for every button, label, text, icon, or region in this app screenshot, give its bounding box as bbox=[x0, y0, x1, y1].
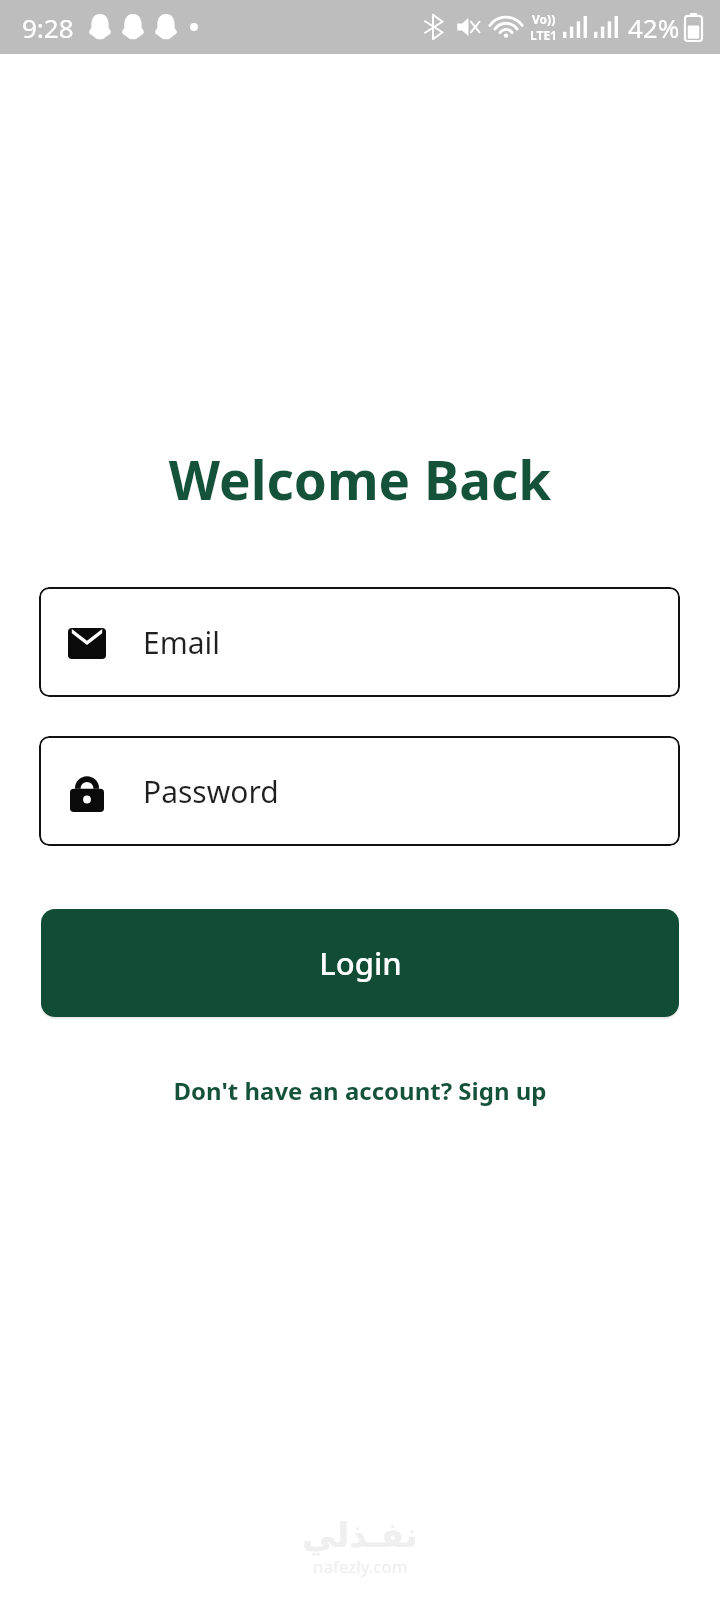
staticText: Login bbox=[319, 942, 402, 984]
staticText: LTE1 bbox=[530, 27, 557, 43]
button[interactable]: Email bbox=[39, 587, 680, 697]
staticText: nafezly.com bbox=[313, 1555, 408, 1578]
staticText: Vo)) bbox=[532, 11, 556, 27]
staticText: نفـذلي bbox=[302, 1515, 418, 1555]
staticText: 42% bbox=[628, 10, 680, 45]
staticText: Don't have an account? Sign up bbox=[173, 1074, 547, 1107]
staticText: 9:28 bbox=[22, 10, 74, 45]
staticText: Email bbox=[143, 622, 221, 663]
button[interactable]: Password bbox=[39, 736, 680, 846]
staticText: Password bbox=[143, 771, 279, 812]
staticText: Welcome Back bbox=[0, 443, 720, 515]
button[interactable]: Login bbox=[41, 909, 679, 1017]
button[interactable]: Don't have an account? Sign up bbox=[0, 1067, 720, 1113]
